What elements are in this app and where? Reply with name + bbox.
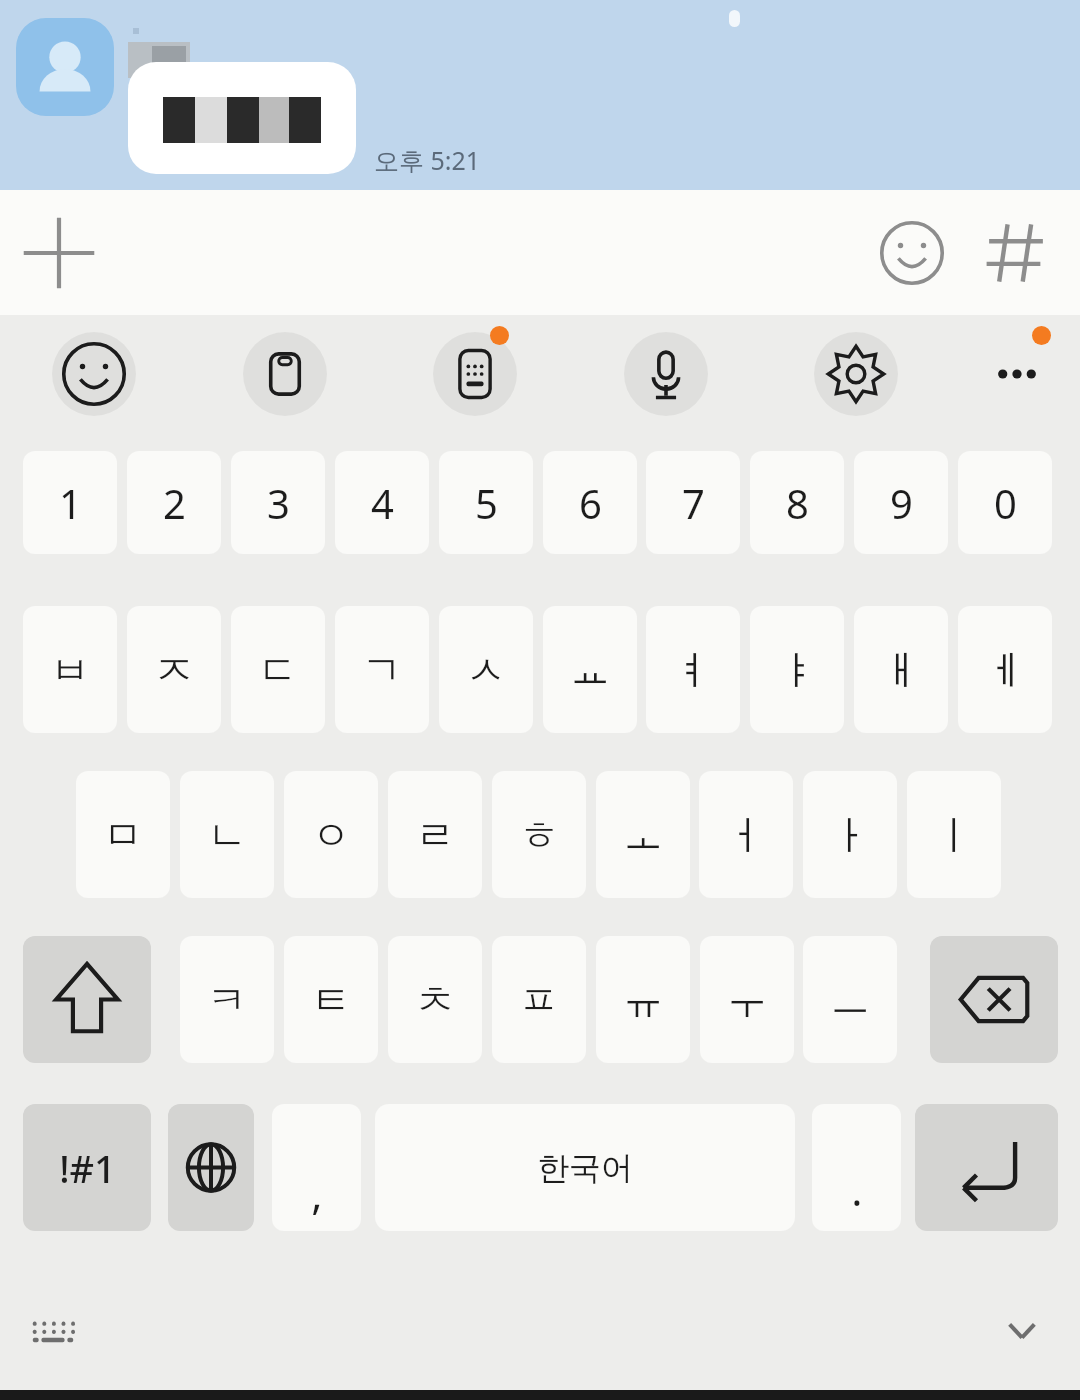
button[interactable]: . — [812, 1104, 901, 1231]
staticText: 3 — [267, 476, 290, 530]
button[interactable]: Enter — [915, 1104, 1058, 1231]
staticText: ㅣ — [934, 810, 974, 860]
staticText: 9 — [890, 476, 913, 530]
staticText: ㄷ — [258, 645, 298, 695]
staticText: ㅑ — [777, 645, 817, 695]
button[interactable]: 2 — [127, 451, 221, 554]
button[interactable]: 4 — [335, 451, 429, 554]
button[interactable]: ㅋ — [180, 936, 274, 1063]
button[interactable]: Hashtag — [974, 211, 1058, 295]
staticText: ㅍ — [519, 975, 559, 1025]
button[interactable]: Backspace — [930, 936, 1058, 1063]
button[interactable]: Keyboard layout — [16, 1294, 90, 1368]
staticText: 한국어 — [537, 1148, 633, 1188]
button[interactable]: !#1 — [23, 1104, 151, 1231]
button[interactable]: 5 — [439, 451, 533, 554]
staticText: ㅊ — [415, 975, 455, 1025]
button[interactable]: Clipboard — [243, 332, 327, 416]
button[interactable]: 한국어 — [375, 1104, 795, 1231]
staticText: 5 — [475, 476, 498, 530]
button[interactable]: , — [272, 1104, 361, 1231]
button[interactable]: ㅍ — [492, 936, 586, 1063]
button[interactable]: 8 — [750, 451, 844, 554]
staticText: ㅔ — [985, 645, 1025, 695]
staticText: 0 — [994, 476, 1017, 530]
button[interactable]: ㅛ — [543, 606, 637, 733]
staticText: ㅅ — [466, 645, 506, 695]
button[interactable]: Hide keyboard — [980, 1289, 1064, 1373]
button[interactable]: ㅅ — [439, 606, 533, 733]
button[interactable]: ㅇ — [284, 771, 378, 898]
staticText: 4 — [371, 476, 394, 530]
button[interactable]: ㅣ — [907, 771, 1001, 898]
staticText: ㄱ — [362, 645, 402, 695]
button[interactable]: ㅐ — [854, 606, 948, 733]
staticText: ㅠ — [623, 975, 663, 1025]
staticText: ㅌ — [311, 975, 351, 1025]
button[interactable]: 3 — [231, 451, 325, 554]
staticText: , — [311, 1165, 323, 1222]
staticText: 2 — [163, 476, 186, 530]
button[interactable]: Settings — [814, 332, 898, 416]
button[interactable]: Keyboard modes — [433, 332, 517, 416]
button[interactable]: ㅓ — [699, 771, 793, 898]
staticText: ㅈ — [154, 645, 194, 695]
staticText: ㅁ — [103, 810, 143, 860]
button[interactable]: 1 — [23, 451, 117, 554]
button[interactable]: ㅔ — [958, 606, 1052, 733]
button[interactable]: More options — [975, 332, 1059, 416]
button[interactable]: ㅁ — [76, 771, 170, 898]
button[interactable]: Change language — [168, 1104, 254, 1231]
button[interactable]: Emoji — [52, 332, 136, 416]
staticText: 1 — [59, 476, 82, 530]
staticText: 6 — [579, 476, 602, 530]
button[interactable]: ㅗ — [596, 771, 690, 898]
staticText: ㅏ — [830, 810, 870, 860]
staticText: ㅕ — [673, 645, 713, 695]
button[interactable] — [128, 62, 356, 174]
button[interactable]: ㄹ — [388, 771, 482, 898]
button[interactable]: ㅎ — [492, 771, 586, 898]
staticText: . — [851, 1161, 863, 1218]
staticText: ㅜ — [727, 975, 767, 1025]
button[interactable]: Emoji — [870, 211, 954, 295]
button[interactable]: ㅜ — [700, 936, 794, 1063]
button[interactable] — [16, 18, 114, 116]
button[interactable]: 0 — [958, 451, 1052, 554]
staticText: ㅋ — [207, 975, 247, 1025]
staticText: ㅡ — [830, 975, 870, 1025]
staticText: ㅎ — [519, 810, 559, 860]
staticText: 8 — [786, 476, 809, 530]
staticText: ㄹ — [415, 810, 455, 860]
staticText: !#1 — [59, 1142, 116, 1194]
button[interactable]: ㅡ — [803, 936, 897, 1063]
staticText: 7 — [682, 476, 705, 530]
button[interactable]: ㅏ — [803, 771, 897, 898]
button[interactable]: ㄱ — [335, 606, 429, 733]
button[interactable]: ㅑ — [750, 606, 844, 733]
button[interactable]: ㅊ — [388, 936, 482, 1063]
button[interactable]: Shift — [23, 936, 151, 1063]
staticText: 오후 5:21 — [374, 143, 481, 177]
staticText: ㄴ — [207, 810, 247, 860]
staticText: ㅛ — [570, 645, 610, 695]
button[interactable]: ㄴ — [180, 771, 274, 898]
button[interactable]: 9 — [854, 451, 948, 554]
button[interactable]: ㄷ — [231, 606, 325, 733]
button[interactable]: 7 — [646, 451, 740, 554]
button[interactable]: ㅂ — [23, 606, 117, 733]
button[interactable]: Voice input — [624, 332, 708, 416]
button[interactable]: ㅈ — [127, 606, 221, 733]
staticText: ㅂ — [50, 645, 90, 695]
button[interactable]: 6 — [543, 451, 637, 554]
staticText: ㅗ — [623, 810, 663, 860]
button[interactable]: ㅕ — [646, 606, 740, 733]
button[interactable]: ㅌ — [284, 936, 378, 1063]
button[interactable]: Add attachment — [17, 211, 101, 295]
staticText: ㅓ — [726, 810, 766, 860]
button[interactable]: ㅠ — [596, 936, 690, 1063]
staticText: ㅇ — [311, 810, 351, 860]
staticText: ㅐ — [881, 645, 921, 695]
